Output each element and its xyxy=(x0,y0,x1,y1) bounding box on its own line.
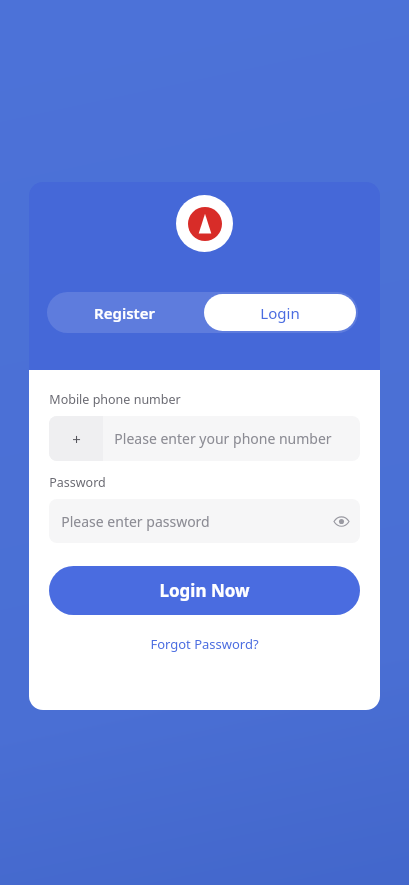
staticText: Login xyxy=(260,303,300,323)
staticText: Forgot Password? xyxy=(150,635,259,653)
staticText: Register xyxy=(94,303,155,323)
button[interactable]: Please enter password xyxy=(49,499,360,543)
staticText: Please enter password xyxy=(61,512,210,531)
button[interactable]: + xyxy=(49,416,103,461)
staticText: Login Now xyxy=(159,579,250,602)
button[interactable]: Login xyxy=(204,294,356,331)
button[interactable]: Forgot Password? xyxy=(146,631,263,657)
staticText: Password xyxy=(49,474,106,491)
button[interactable]: Please enter your phone number xyxy=(103,416,360,461)
staticText: Mobile phone number xyxy=(49,391,181,408)
button[interactable]: Show password xyxy=(326,506,356,536)
staticText: Please enter your phone number xyxy=(114,429,332,448)
staticText: + xyxy=(72,429,81,449)
button[interactable]: Register xyxy=(47,292,202,333)
button[interactable]: Login Now xyxy=(49,566,360,615)
